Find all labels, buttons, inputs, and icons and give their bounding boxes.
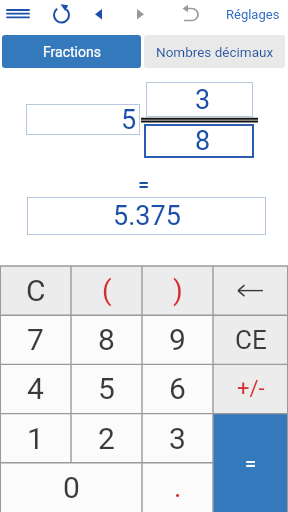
staticText: 0 bbox=[63, 470, 80, 505]
staticText: Réglages bbox=[226, 7, 280, 22]
staticText: ) bbox=[173, 274, 183, 307]
staticText: 8 bbox=[98, 322, 115, 357]
staticText: 2 bbox=[98, 421, 115, 456]
staticText: 8 bbox=[195, 125, 211, 157]
staticText: 1 bbox=[27, 421, 44, 456]
staticText: 3 bbox=[195, 84, 211, 116]
staticText: +/- bbox=[237, 376, 265, 402]
staticText: CE bbox=[235, 325, 267, 355]
staticText: . bbox=[174, 471, 182, 504]
staticText: ( bbox=[102, 274, 112, 307]
staticText: 3 bbox=[169, 421, 186, 456]
staticText: 9 bbox=[169, 322, 186, 357]
staticText: = bbox=[245, 452, 257, 475]
staticText: 6 bbox=[169, 371, 186, 406]
staticText: Fractions bbox=[43, 44, 101, 60]
staticText: 5.375 bbox=[113, 200, 181, 232]
staticText: Nombres décimaux bbox=[156, 44, 274, 60]
staticText: C bbox=[26, 273, 46, 308]
staticText: 5 bbox=[121, 104, 137, 135]
staticText: = bbox=[138, 173, 150, 196]
staticText: 4 bbox=[27, 371, 44, 406]
staticText: 5 bbox=[98, 371, 115, 406]
staticText: 7 bbox=[27, 322, 44, 357]
